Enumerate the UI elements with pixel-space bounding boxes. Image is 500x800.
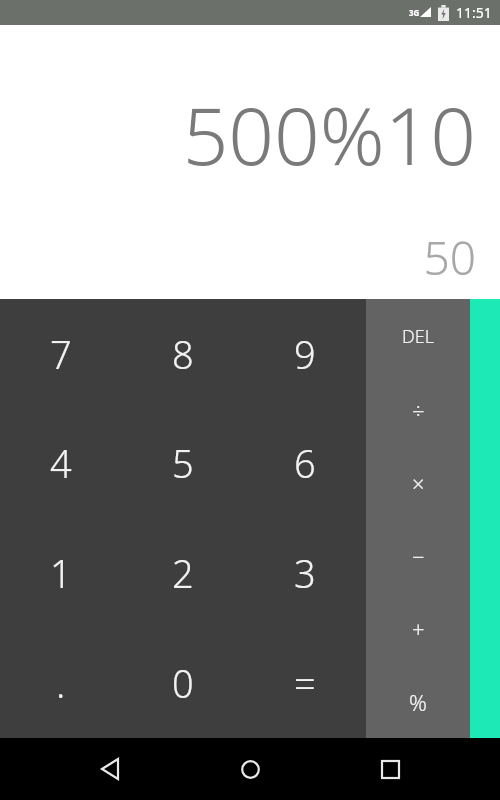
button[interactable]: 3: [244, 518, 366, 628]
staticText: ×: [412, 468, 425, 498]
staticText: DEL: [402, 324, 435, 349]
button[interactable]: ×: [366, 446, 470, 519]
staticText: .: [56, 657, 66, 709]
button[interactable]: DEL: [366, 299, 470, 373]
staticText: 2: [172, 547, 194, 599]
staticText: 1: [50, 547, 72, 599]
button[interactable]: 9: [244, 299, 366, 408]
staticText: 0: [172, 657, 194, 709]
button[interactable]: 1: [0, 518, 122, 628]
staticText: 4: [50, 437, 72, 489]
button[interactable]: Back: [80, 739, 140, 799]
staticText: 11:51: [456, 3, 492, 22]
button[interactable]: 5: [122, 408, 244, 518]
button[interactable]: 8: [122, 299, 244, 408]
button[interactable]: =: [244, 628, 366, 738]
staticText: 3: [294, 547, 316, 599]
staticText: 50: [423, 226, 476, 289]
staticText: +: [412, 614, 425, 644]
staticText: 7: [50, 328, 72, 380]
staticText: −: [412, 541, 425, 571]
staticText: %: [409, 687, 427, 717]
button[interactable]: 2: [122, 518, 244, 628]
button[interactable]: ÷: [366, 373, 470, 446]
button[interactable]: 6: [244, 408, 366, 518]
staticText: ÷: [412, 395, 425, 425]
button[interactable]: 0: [122, 628, 244, 738]
button[interactable]: %: [366, 665, 470, 738]
staticText: 500%10: [182, 79, 476, 188]
button[interactable]: .: [0, 628, 122, 738]
button[interactable]: 4: [0, 408, 122, 518]
button[interactable]: Home: [220, 739, 280, 799]
button[interactable]: −: [366, 519, 470, 592]
button[interactable]: +: [366, 592, 470, 665]
button[interactable]: Recents: [360, 739, 420, 799]
staticText: 5: [172, 437, 194, 489]
staticText: 6: [294, 437, 316, 489]
staticText: 8: [172, 328, 194, 380]
staticText: =: [294, 657, 316, 709]
staticText: 9: [294, 328, 316, 380]
button[interactable]: 7: [0, 299, 122, 408]
staticText: 3G: [409, 7, 420, 18]
